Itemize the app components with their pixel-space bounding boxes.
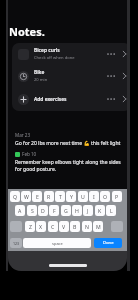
button[interactable]: Backspace [111, 221, 123, 232]
button[interactable]: B [70, 221, 80, 232]
staticText: X [39, 223, 43, 230]
button[interactable]: S [27, 205, 37, 216]
staticText: F [53, 207, 56, 214]
button[interactable]: A [15, 205, 25, 216]
button[interactable]: Q [10, 191, 20, 202]
button[interactable]: J [83, 205, 93, 216]
button[interactable]: X [36, 221, 46, 232]
staticText: Bike [34, 69, 45, 76]
button[interactable]: More options [105, 47, 117, 61]
button[interactable]: T [55, 191, 65, 202]
staticText: Notes. [9, 24, 45, 39]
button[interactable]: L [106, 205, 116, 216]
button[interactable]: W [21, 191, 31, 202]
button[interactable]: Z [25, 221, 35, 232]
staticText: Bicep curls [34, 47, 60, 54]
button[interactable]: Bike [12, 65, 127, 87]
staticText: P [115, 193, 119, 200]
staticText: H [75, 207, 79, 214]
button[interactable]: U [78, 191, 88, 202]
button[interactable]: G [61, 205, 71, 216]
staticText: Z [29, 223, 32, 230]
staticText: space [52, 241, 63, 246]
staticText: V [62, 223, 66, 230]
button[interactable]: N [82, 221, 92, 232]
button[interactable]: More options [105, 92, 117, 106]
staticText: O [103, 193, 108, 200]
button[interactable]: P [112, 191, 122, 202]
button[interactable]: M [93, 221, 103, 232]
staticText: G [64, 207, 68, 214]
button[interactable]: 123 [10, 238, 22, 248]
button[interactable]: D [38, 205, 48, 216]
staticText: 123 [13, 241, 20, 246]
staticText: W [24, 193, 29, 200]
staticText: S [31, 207, 34, 214]
button[interactable]: I [89, 191, 99, 202]
button[interactable]: More options [105, 69, 117, 83]
button[interactable]: V [59, 221, 69, 232]
staticText: D [41, 207, 45, 214]
button[interactable]: Bicep curls [12, 43, 127, 65]
staticText: J [87, 207, 89, 214]
staticText: Mar 23 [15, 132, 31, 138]
staticText: R [47, 193, 51, 200]
staticText: K [98, 207, 102, 214]
button[interactable]: O [100, 191, 110, 202]
button[interactable]: F [49, 205, 59, 216]
button[interactable]: K [95, 205, 105, 216]
staticText: M [96, 223, 101, 230]
button[interactable]: C [48, 221, 58, 232]
staticText: E [36, 193, 39, 200]
button[interactable]: R [44, 191, 54, 202]
button[interactable]: Done [94, 238, 122, 248]
staticText: U [81, 193, 85, 200]
staticText: T [59, 193, 62, 200]
staticText: Add exercises [34, 96, 67, 103]
staticText: A [18, 207, 22, 214]
button[interactable]: H [72, 205, 82, 216]
staticText: Go for 20 lbs more next time 💪 this felt… [15, 140, 121, 147]
staticText: Remember keep elbows tight along the sid… [15, 159, 123, 172]
staticText: Done [103, 240, 114, 246]
button[interactable]: space [23, 238, 91, 248]
staticText: I [93, 193, 95, 200]
button[interactable]: Shift [10, 221, 22, 232]
button[interactable]: E [32, 191, 42, 202]
staticText: B [73, 223, 77, 230]
staticText: 20 min [34, 77, 48, 83]
staticText: N [85, 223, 89, 230]
staticText: Y [70, 193, 73, 200]
staticText: Check off when done [34, 55, 75, 61]
staticText: Feb 10 [22, 151, 37, 157]
staticText: L [110, 207, 113, 214]
button[interactable]: Y [66, 191, 76, 202]
staticText: Q [13, 193, 18, 200]
button[interactable]: Add exercises [12, 87, 127, 111]
staticText: C [51, 223, 55, 230]
